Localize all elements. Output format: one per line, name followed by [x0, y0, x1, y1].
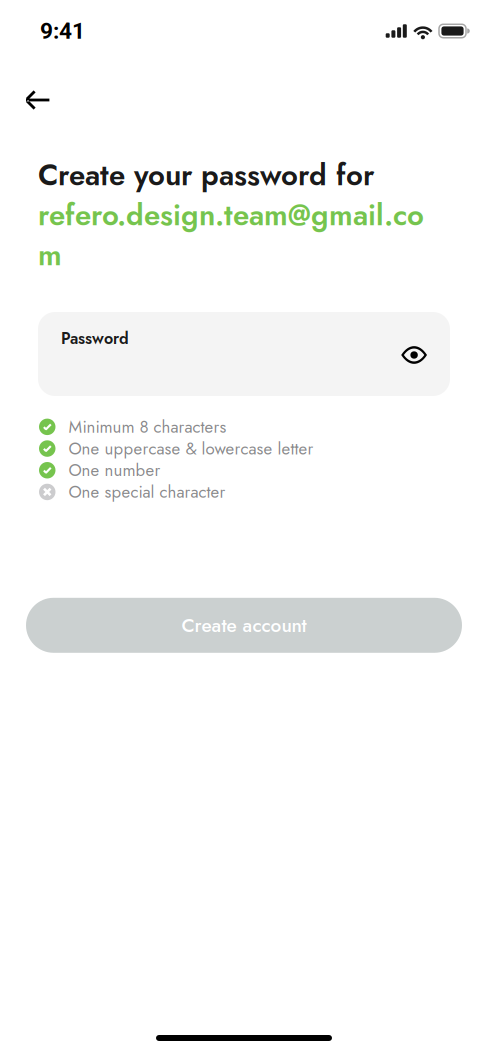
- staticText: Create your password for: [38, 154, 374, 196]
- button[interactable]: Password: [38, 312, 450, 396]
- button[interactable]: Back: [18, 77, 63, 123]
- staticText: One special character: [68, 480, 225, 504]
- staticText: One number: [68, 458, 160, 482]
- staticText: Create account: [181, 611, 306, 639]
- staticText: m: [38, 234, 62, 276]
- staticText: Minimum 8 characters: [68, 415, 226, 439]
- staticText: 9:41: [40, 18, 85, 44]
- staticText: refero.design.team@gmail.co: [38, 194, 424, 236]
- staticText: One uppercase & lowercase letter: [68, 436, 313, 461]
- button[interactable]: Create account: [26, 598, 462, 653]
- staticText: Password: [61, 327, 129, 350]
